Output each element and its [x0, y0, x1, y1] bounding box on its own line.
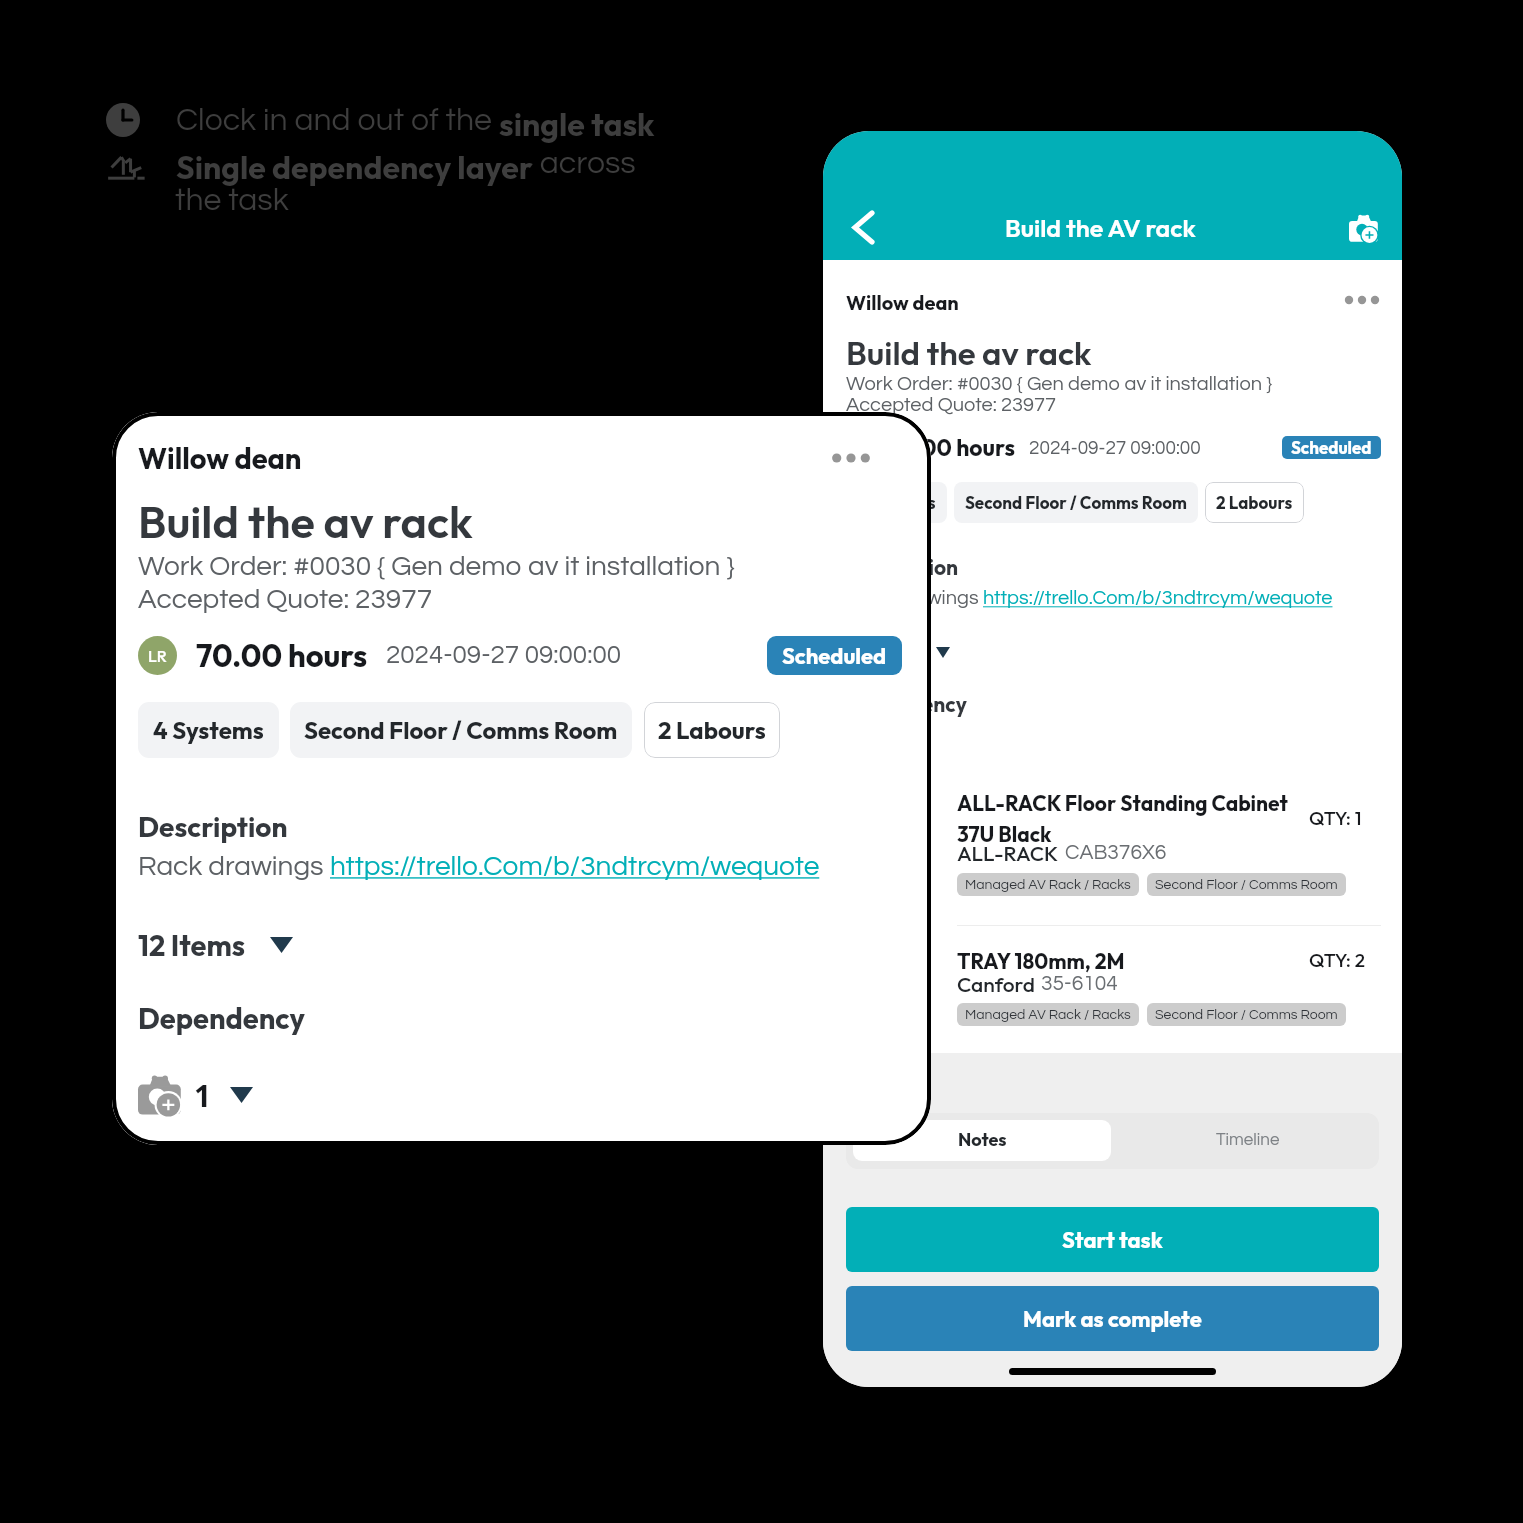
staticText: Build the av rack [138, 493, 473, 550]
staticText: Dependency [138, 1000, 306, 1037]
button[interactable]: Scheduled [767, 636, 902, 675]
staticText: TRAY 180mm, 2M [957, 948, 1125, 974]
button[interactable]: More options [821, 428, 881, 488]
staticText: 2024-09-27 09:00:00 [1029, 438, 1201, 458]
button[interactable]: Back [834, 198, 892, 256]
staticText: ALL-RACK Floor Standing Cabinet [957, 790, 1288, 816]
staticText: 12 Items [846, 639, 924, 665]
staticText: ALL-RACK [957, 840, 1059, 866]
staticText: 4 Systems [857, 492, 936, 513]
staticText: Build the AV rack [1005, 212, 1196, 244]
staticText: Willow dean [138, 440, 302, 477]
button[interactable]: 2 Labours [1205, 482, 1304, 523]
staticText: 2024-09-27 09:00:00 [386, 642, 622, 669]
button[interactable]: Timeline [1112, 1113, 1379, 1169]
button[interactable]: 2 Labours [644, 702, 780, 758]
staticText: Managed AV Rack / Racks [965, 878, 1131, 892]
button[interactable]: Scheduled [1282, 436, 1381, 459]
button[interactable]: Notes [853, 1120, 1111, 1161]
button[interactable]: Mark as complete [846, 1286, 1379, 1351]
staticText: Scheduled [1291, 437, 1372, 458]
staticText: 35-6104 [1041, 973, 1118, 995]
staticText: Canford [957, 971, 1035, 997]
staticText: QTY: 2 [1309, 948, 1365, 972]
staticText: Timeline [1216, 1131, 1280, 1149]
staticText: Second Floor / Comms Room [304, 715, 618, 745]
staticText: Notes [958, 1128, 1007, 1151]
staticText: Second Floor / Comms Room [965, 492, 1187, 513]
staticText: Work Order: #0030 { Gen demo av it insta… [846, 374, 1273, 395]
staticText: Second Floor / Comms Room [1155, 1008, 1338, 1022]
button[interactable]: https://trello.Com/b/3ndtrcym/wequote [330, 852, 820, 881]
staticText: Single dependency layer [176, 147, 533, 187]
staticText: CAB376X6 [1065, 842, 1167, 864]
staticText: Dependency [846, 691, 968, 717]
button[interactable]: Second Floor / Comms Room [954, 482, 1198, 523]
staticText: LR [148, 646, 167, 666]
staticText: 12 Items [138, 927, 246, 964]
button[interactable]: 4 Systems [138, 702, 279, 758]
staticText: LR [853, 441, 868, 456]
staticText: Build the av rack [846, 332, 1092, 374]
button[interactable]: 12 Items [132, 921, 300, 967]
staticText: QTY: 1 [1309, 806, 1362, 830]
button[interactable]: Add photo [1335, 199, 1393, 257]
staticText: across [533, 147, 636, 180]
staticText: Start task [1062, 1226, 1163, 1254]
button[interactable]: https://trello.Com/b/3ndtrcym/wequote [983, 588, 1333, 609]
staticText: Rack drawings [138, 852, 330, 881]
button[interactable]: More options [1342, 280, 1382, 320]
staticText: 70.00 hours [196, 636, 368, 675]
staticText: Willow dean [846, 290, 959, 315]
staticText: 70.00 hours [888, 433, 1016, 462]
button[interactable]: Second Floor / Comms Room [290, 702, 632, 758]
button[interactable]: TRAY 180mm, 2M [823, 936, 1402, 1053]
staticText: single task [499, 104, 655, 144]
staticText: Description [846, 554, 959, 580]
staticText: Managed AV Rack / Racks [965, 1008, 1131, 1022]
staticText: Work Order: #0030 { Gen demo av it insta… [138, 552, 735, 581]
staticText: 37U Black [957, 821, 1052, 847]
button[interactable]: ALL-RACK Floor Standing Cabinet [823, 778, 1402, 925]
staticText: 1 [194, 1075, 212, 1116]
button[interactable]: 4 Systems [846, 482, 947, 523]
staticText: Rack drawings [846, 588, 983, 609]
staticText: 2 Labours [658, 715, 766, 745]
staticText: Description [138, 809, 288, 844]
staticText: Mark as complete [1023, 1305, 1202, 1333]
button[interactable]: Start task [846, 1207, 1379, 1272]
staticText: Clock in and out of the [176, 104, 499, 137]
staticText: 4 Systems [153, 715, 264, 745]
button[interactable]: 1 [132, 1070, 260, 1122]
staticText: Scheduled [782, 642, 887, 670]
staticText: the task [175, 184, 289, 217]
staticText: Accepted Quote: 23977 [138, 585, 433, 614]
staticText: 2 Labours [1216, 492, 1293, 513]
button[interactable]: 12 Items [840, 635, 956, 669]
staticText: Second Floor / Comms Room [1155, 878, 1338, 892]
staticText: Accepted Quote: 23977 [846, 395, 1057, 416]
